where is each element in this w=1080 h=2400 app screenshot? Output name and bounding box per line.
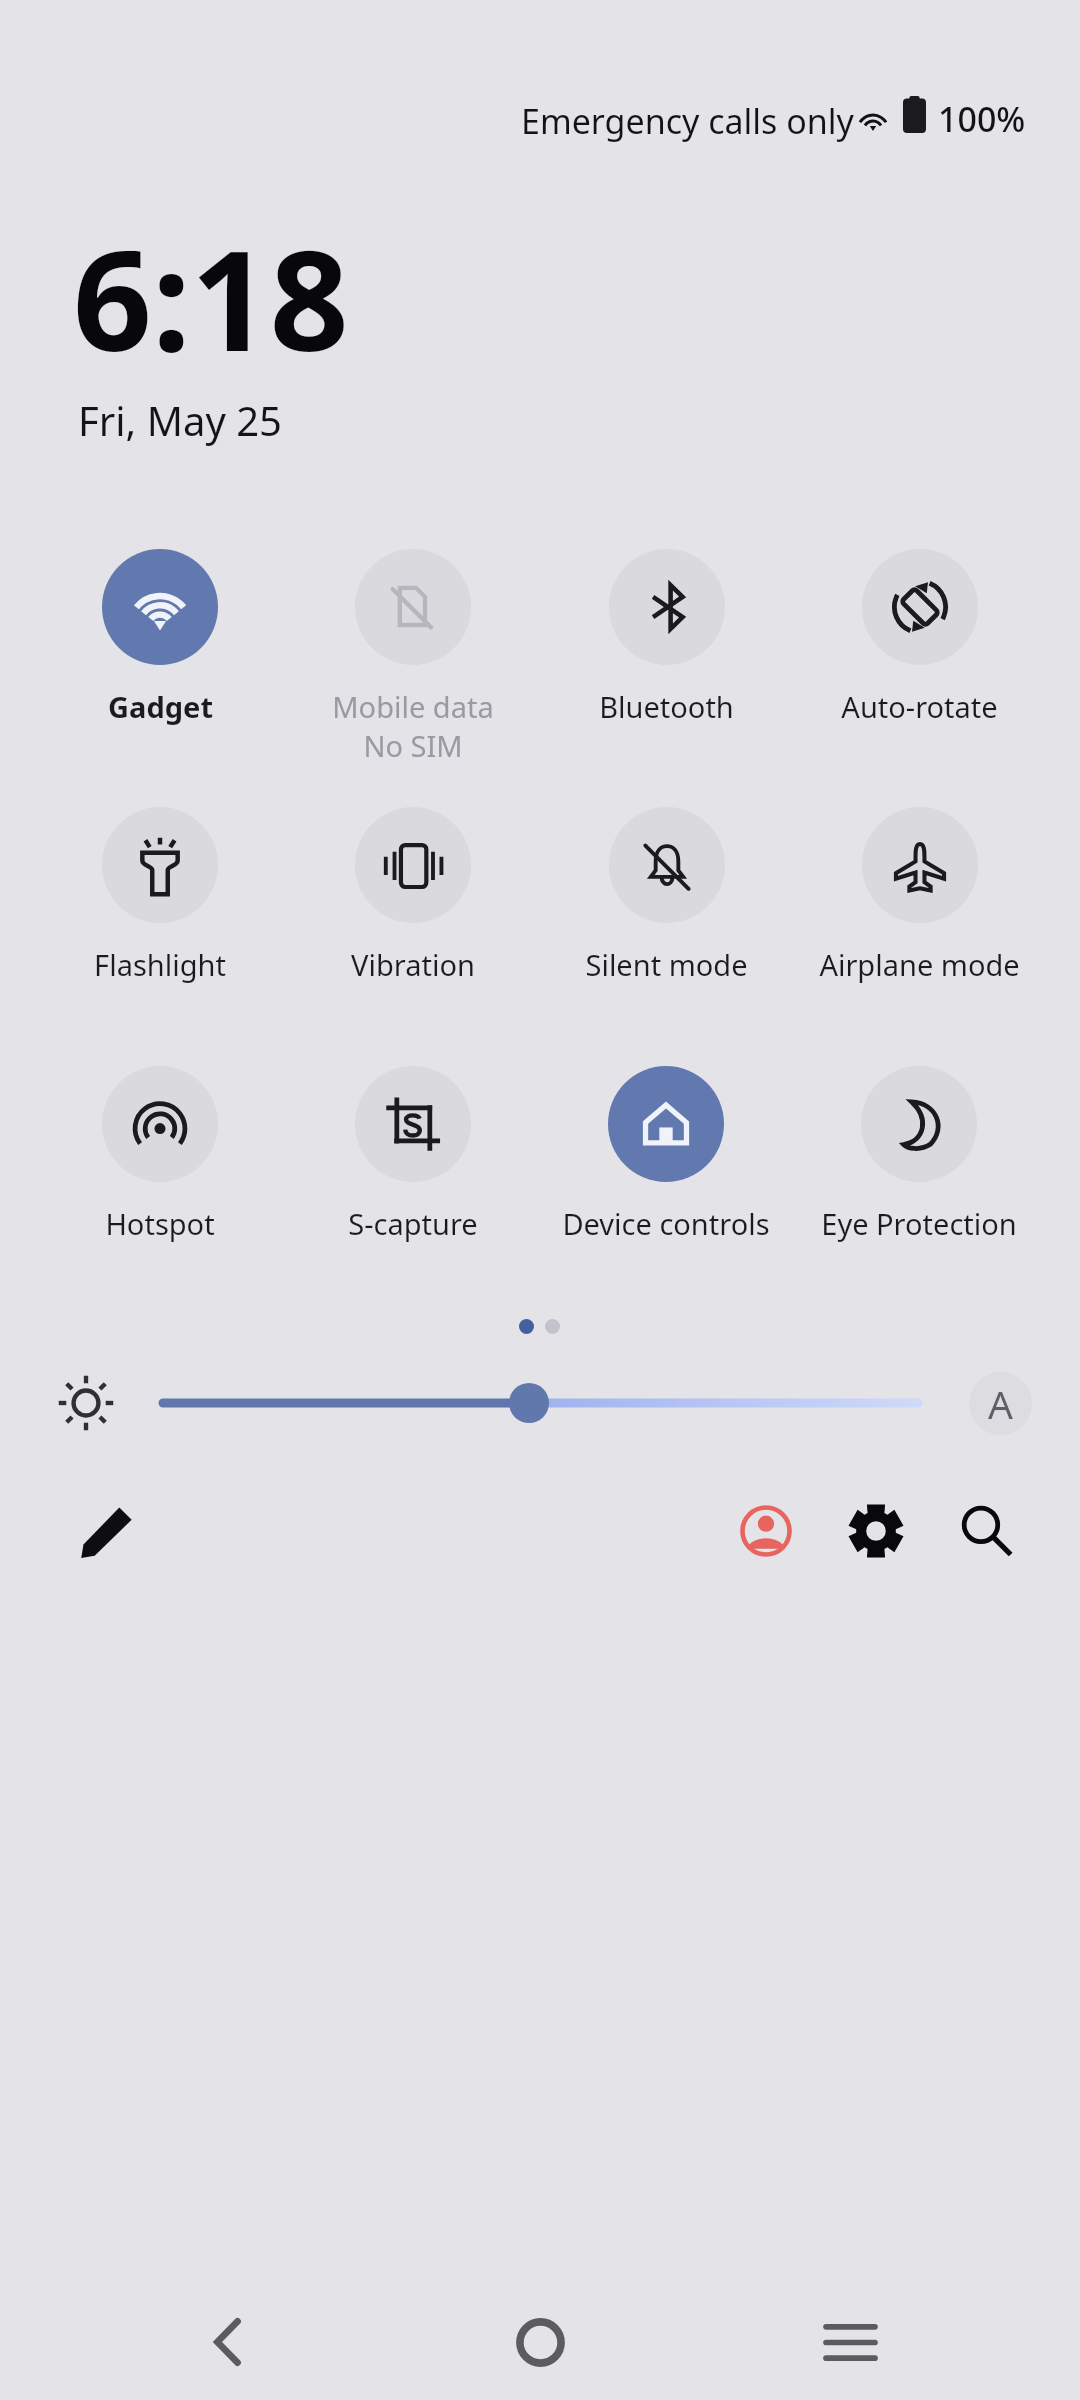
- button[interactable]: Flashlight: [34, 799, 286, 1029]
- staticText: Mobile data: [332, 687, 494, 726]
- button[interactable]: Edit: [66, 1490, 148, 1572]
- button[interactable]: Search: [945, 1490, 1027, 1572]
- staticText: No SIM: [363, 726, 463, 765]
- staticText: Device controls: [562, 1204, 770, 1243]
- button[interactable]: S-capture: [287, 1058, 539, 1288]
- button[interactable]: Device controls: [540, 1058, 792, 1288]
- button[interactable]: Eye Protection: [793, 1058, 1045, 1288]
- staticText: Auto-rotate: [841, 687, 998, 726]
- button[interactable]: Brightness: [46, 1363, 126, 1443]
- button[interactable]: Mobile data: [287, 541, 539, 771]
- staticText: Silent mode: [585, 945, 748, 984]
- staticText: S-capture: [348, 1204, 478, 1243]
- button[interactable]: Page indicator: [500, 1305, 580, 1349]
- staticText: Hotspot: [105, 1204, 215, 1243]
- button[interactable]: Silent mode: [540, 799, 792, 1029]
- staticText: Flashlight: [94, 945, 226, 984]
- button[interactable]: Gadget: [34, 541, 286, 771]
- staticText: Airplane mode: [819, 945, 1020, 984]
- staticText: Emergency calls only: [521, 98, 854, 144]
- button[interactable]: Bluetooth: [540, 541, 792, 771]
- button[interactable]: Settings: [835, 1490, 917, 1572]
- staticText: Fri, May 25: [78, 393, 282, 447]
- staticText: Vibration: [351, 945, 475, 984]
- button[interactable]: Brightness slider: [150, 1370, 930, 1436]
- staticText: Eye Protection: [821, 1204, 1017, 1243]
- button[interactable]: Back: [167, 2282, 287, 2400]
- button[interactable]: Home: [480, 2282, 600, 2400]
- button[interactable]: Hotspot: [34, 1058, 286, 1288]
- staticText: Bluetooth: [599, 687, 734, 726]
- staticText: Gadget: [108, 687, 213, 726]
- button[interactable]: Auto brightness: [969, 1372, 1032, 1435]
- staticText: 6:18: [73, 203, 349, 391]
- staticText: 100%: [938, 96, 1026, 142]
- button[interactable]: Account: [725, 1490, 807, 1572]
- button[interactable]: Vibration: [287, 799, 539, 1029]
- button[interactable]: Recents: [790, 2282, 910, 2400]
- staticText: A: [988, 1377, 1013, 1430]
- button[interactable]: Airplane mode: [793, 799, 1045, 1029]
- button[interactable]: Auto-rotate: [793, 541, 1045, 771]
